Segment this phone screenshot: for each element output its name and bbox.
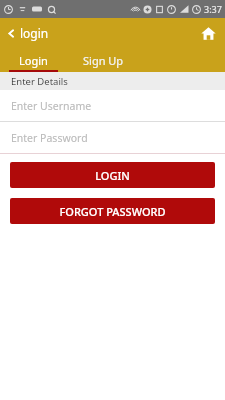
button[interactable]: Home — [197, 22, 219, 44]
button[interactable]: FORGOT PASSWORD — [10, 198, 215, 224]
staticText: Sign Up — [83, 53, 124, 68]
staticText: Enter Details — [11, 75, 68, 88]
staticText: 3:37 — [204, 3, 222, 15]
staticText: Enter Password — [11, 131, 88, 145]
staticText: Login — [19, 53, 48, 68]
staticText: Enter Username — [11, 99, 92, 113]
staticText: FORGOT PASSWORD — [59, 204, 166, 219]
staticText: LOGIN — [95, 168, 130, 183]
button[interactable]: Enter Password — [0, 122, 225, 154]
button[interactable]: Enter Username — [0, 90, 225, 122]
button[interactable]: Sign Up — [67, 48, 139, 72]
staticText: login — [20, 25, 49, 41]
button[interactable]: LOGIN — [10, 162, 215, 188]
button[interactable]: Login — [0, 48, 67, 72]
button[interactable]: Back — [0, 21, 57, 45]
